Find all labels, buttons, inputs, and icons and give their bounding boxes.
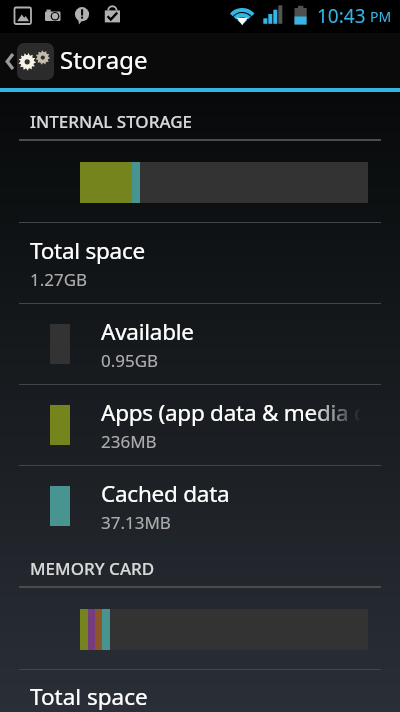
button[interactable]: Navigate up, Settings	[0, 33, 400, 88]
staticText: 37.13MB	[101, 511, 171, 534]
staticText: Cached data	[101, 478, 230, 509]
staticText: Total space	[30, 681, 148, 712]
staticText: Total space	[30, 235, 145, 266]
button[interactable]: Total space	[0, 223, 400, 303]
staticText: PM	[370, 7, 392, 26]
staticText: 1.27GB	[30, 268, 88, 291]
button[interactable]: Total space	[0, 670, 400, 712]
staticText: 0.95GB	[101, 349, 159, 372]
staticText: MEMORY CARD	[30, 557, 155, 580]
staticText: 10:43	[317, 3, 366, 29]
button[interactable]: Available	[0, 304, 400, 384]
staticText: Storage	[60, 43, 148, 76]
staticText: INTERNAL STORAGE	[30, 110, 193, 133]
button[interactable]: Cached data	[0, 466, 400, 546]
staticText: 236MB	[101, 430, 157, 453]
button[interactable]: Apps (app data & media content)	[0, 385, 400, 465]
staticText: Apps (app data & media content)	[101, 397, 400, 428]
staticText: Available	[101, 316, 194, 347]
